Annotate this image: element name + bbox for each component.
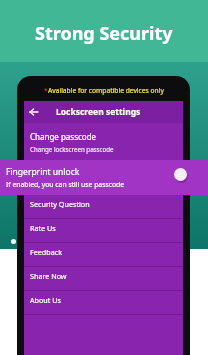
staticText: Change passcode bbox=[30, 131, 97, 142]
button[interactable]: Fingerprint unlock bbox=[0, 160, 208, 195]
staticText: Security Question bbox=[30, 199, 90, 209]
button[interactable]: About Us bbox=[24, 291, 183, 315]
staticText: Share Now bbox=[30, 271, 67, 281]
staticText: Available for compatible devices only bbox=[48, 86, 164, 95]
staticText: Feedback bbox=[30, 247, 62, 257]
button[interactable] bbox=[174, 168, 187, 181]
staticText: * bbox=[44, 86, 48, 95]
staticText: Lockscreen settings bbox=[56, 106, 141, 118]
button[interactable] bbox=[30, 108, 38, 116]
staticText: Fingerprint unlock bbox=[6, 166, 80, 178]
staticText: Change lockscreen passcode bbox=[30, 145, 114, 153]
button[interactable]: Feedback bbox=[24, 243, 183, 267]
button[interactable]: Share Now bbox=[24, 267, 183, 291]
staticText: Rate Us bbox=[30, 223, 56, 233]
button[interactable]: Lockscreen settings bbox=[24, 101, 183, 123]
staticText: About Us bbox=[30, 295, 61, 305]
button[interactable]: Change passcode bbox=[30, 131, 189, 153]
staticText: Strong Security bbox=[35, 21, 173, 46]
button[interactable]: Rate Us bbox=[24, 219, 183, 243]
staticText: If enabled, you can still use passcode bbox=[6, 180, 125, 189]
button[interactable]: Security Question bbox=[24, 195, 183, 219]
